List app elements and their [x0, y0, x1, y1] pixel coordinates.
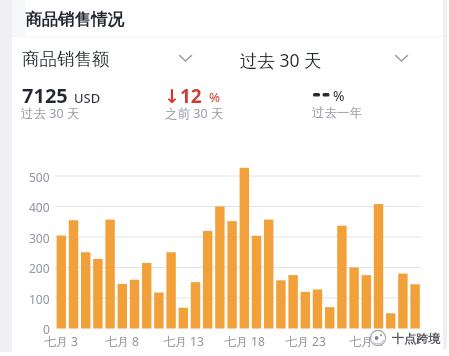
staticText: %	[209, 88, 221, 106]
staticText: 0	[43, 321, 50, 337]
staticText: 之前 30 天	[165, 105, 224, 122]
staticText: 七月 23	[285, 333, 326, 349]
staticText: 十点跨境	[392, 331, 440, 346]
staticText: 商品销售情况	[25, 9, 124, 30]
staticText: %	[333, 87, 345, 105]
staticText: 过去 30 天	[240, 48, 322, 72]
staticText: 七月 8	[105, 333, 139, 349]
staticText: 100	[29, 291, 50, 307]
staticText: 七月 13	[163, 333, 204, 349]
staticText: 200	[29, 260, 50, 276]
staticText: 过去 30 天	[21, 105, 80, 122]
button[interactable]	[230, 42, 420, 74]
staticText: 七月 18	[224, 333, 265, 349]
staticText: 过去一年	[312, 105, 362, 121]
staticText: 七月 2	[349, 333, 383, 349]
button[interactable]	[395, 55, 408, 63]
staticText: 7125	[22, 82, 68, 109]
button[interactable]: 十点跨境	[368, 328, 448, 350]
button[interactable]	[179, 55, 192, 63]
staticText: 500	[29, 169, 50, 185]
staticText: 商品销售额	[22, 48, 110, 70]
staticText: 300	[29, 230, 50, 246]
staticText: USD	[74, 89, 101, 107]
staticText: 400	[29, 199, 50, 215]
staticText: ↓12	[164, 83, 202, 109]
staticText: 七月 3	[44, 333, 78, 349]
button[interactable]	[12, 42, 212, 74]
